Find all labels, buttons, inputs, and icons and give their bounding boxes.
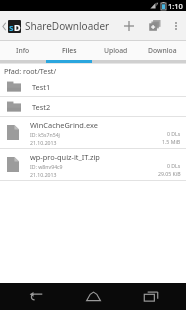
staticText: 0 DLs — [167, 130, 181, 137]
staticText: ID: k5s7n54j — [30, 131, 60, 138]
staticText: D — [14, 21, 21, 33]
staticText: Files — [62, 46, 77, 55]
staticText: wp-pro-quiz-it_IT.zip — [30, 152, 100, 162]
button[interactable]: Files — [46, 41, 92, 60]
staticText: Pfad: root/Test/ — [4, 66, 57, 76]
button[interactable]: Test1 — [0, 77, 186, 96]
button[interactable]: New share — [142, 11, 168, 40]
staticText: Downloa — [148, 46, 177, 55]
staticText: 1.5 MiB — [162, 138, 181, 145]
staticText: 21.10.2013 — [30, 171, 57, 178]
button[interactable]: Recent apps — [129, 283, 173, 310]
button[interactable]: Info — [0, 41, 46, 60]
staticText: s — [9, 21, 14, 33]
staticText: WinCacheGrind.exe — [30, 120, 98, 130]
staticText: Test1 — [32, 82, 51, 92]
button[interactable]: Back — [14, 283, 58, 310]
button[interactable]: More options — [168, 11, 184, 40]
staticText: Info — [16, 46, 30, 55]
staticText: Upload — [104, 46, 128, 55]
staticText: ShareDownloader — [25, 19, 110, 33]
staticText: 1:10 — [168, 1, 183, 11]
button[interactable]: s — [0, 19, 114, 33]
staticText: 0 DLs — [167, 162, 181, 169]
button[interactable]: Add — [116, 11, 142, 40]
staticText: ID: w8nv94c9 — [30, 163, 63, 170]
staticText: Test2 — [32, 102, 51, 112]
button[interactable]: Test2 — [0, 97, 186, 116]
button[interactable]: Downloa — [139, 41, 186, 60]
button[interactable]: Home — [71, 283, 115, 310]
staticText: 21.10.2013 — [30, 139, 57, 146]
button[interactable]: Upload — [92, 41, 139, 60]
button[interactable]: wp-pro-quiz-it_IT.zip — [0, 149, 186, 180]
button[interactable]: WinCacheGrind.exe — [0, 117, 186, 148]
staticText: 29.05 KiB — [158, 170, 181, 177]
